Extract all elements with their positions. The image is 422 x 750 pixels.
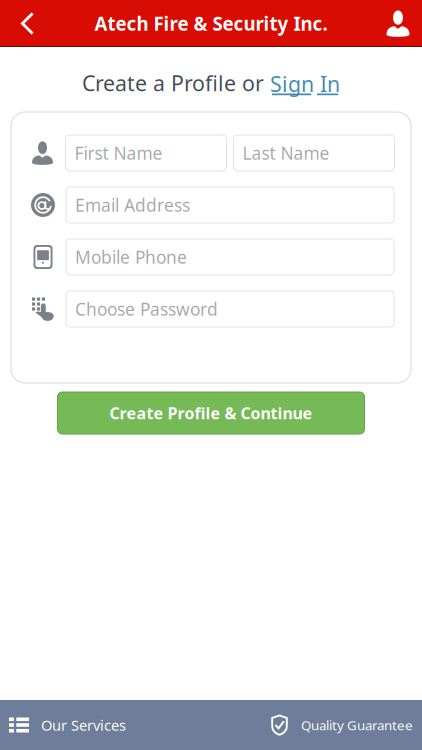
button[interactable]: Sign In (270, 69, 340, 96)
staticText: Email Address (75, 193, 190, 216)
button[interactable]: Back (0, 0, 55, 47)
staticText: Atech Fire & Security Inc. (94, 11, 327, 36)
button[interactable]: Create Profile & Continue (57, 392, 364, 434)
staticText: Choose Password (75, 297, 218, 320)
staticText: Quality Guarantee (301, 716, 413, 734)
staticText: Last Name (242, 141, 329, 164)
staticText: Our Services (41, 715, 126, 735)
button[interactable]: Mobile Phone (66, 239, 394, 275)
button[interactable]: Quality Guarantee (271, 700, 422, 750)
button[interactable]: Email Address (66, 187, 394, 223)
staticText: Sign In (270, 69, 340, 98)
button[interactable]: First Name (65, 135, 226, 171)
staticText: Create Profile & Continue (109, 402, 312, 424)
button[interactable]: Choose Password (66, 291, 394, 327)
staticText: Mobile Phone (75, 245, 187, 268)
button[interactable]: Account (374, 0, 422, 47)
button[interactable]: Our Services (0, 700, 134, 750)
staticText: Create a Profile or (82, 69, 270, 97)
staticText: First Name (74, 141, 162, 164)
button[interactable]: Last Name (233, 135, 394, 171)
